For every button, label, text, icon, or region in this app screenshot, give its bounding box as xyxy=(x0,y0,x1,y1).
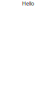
staticText: Hello xyxy=(22,0,34,7)
